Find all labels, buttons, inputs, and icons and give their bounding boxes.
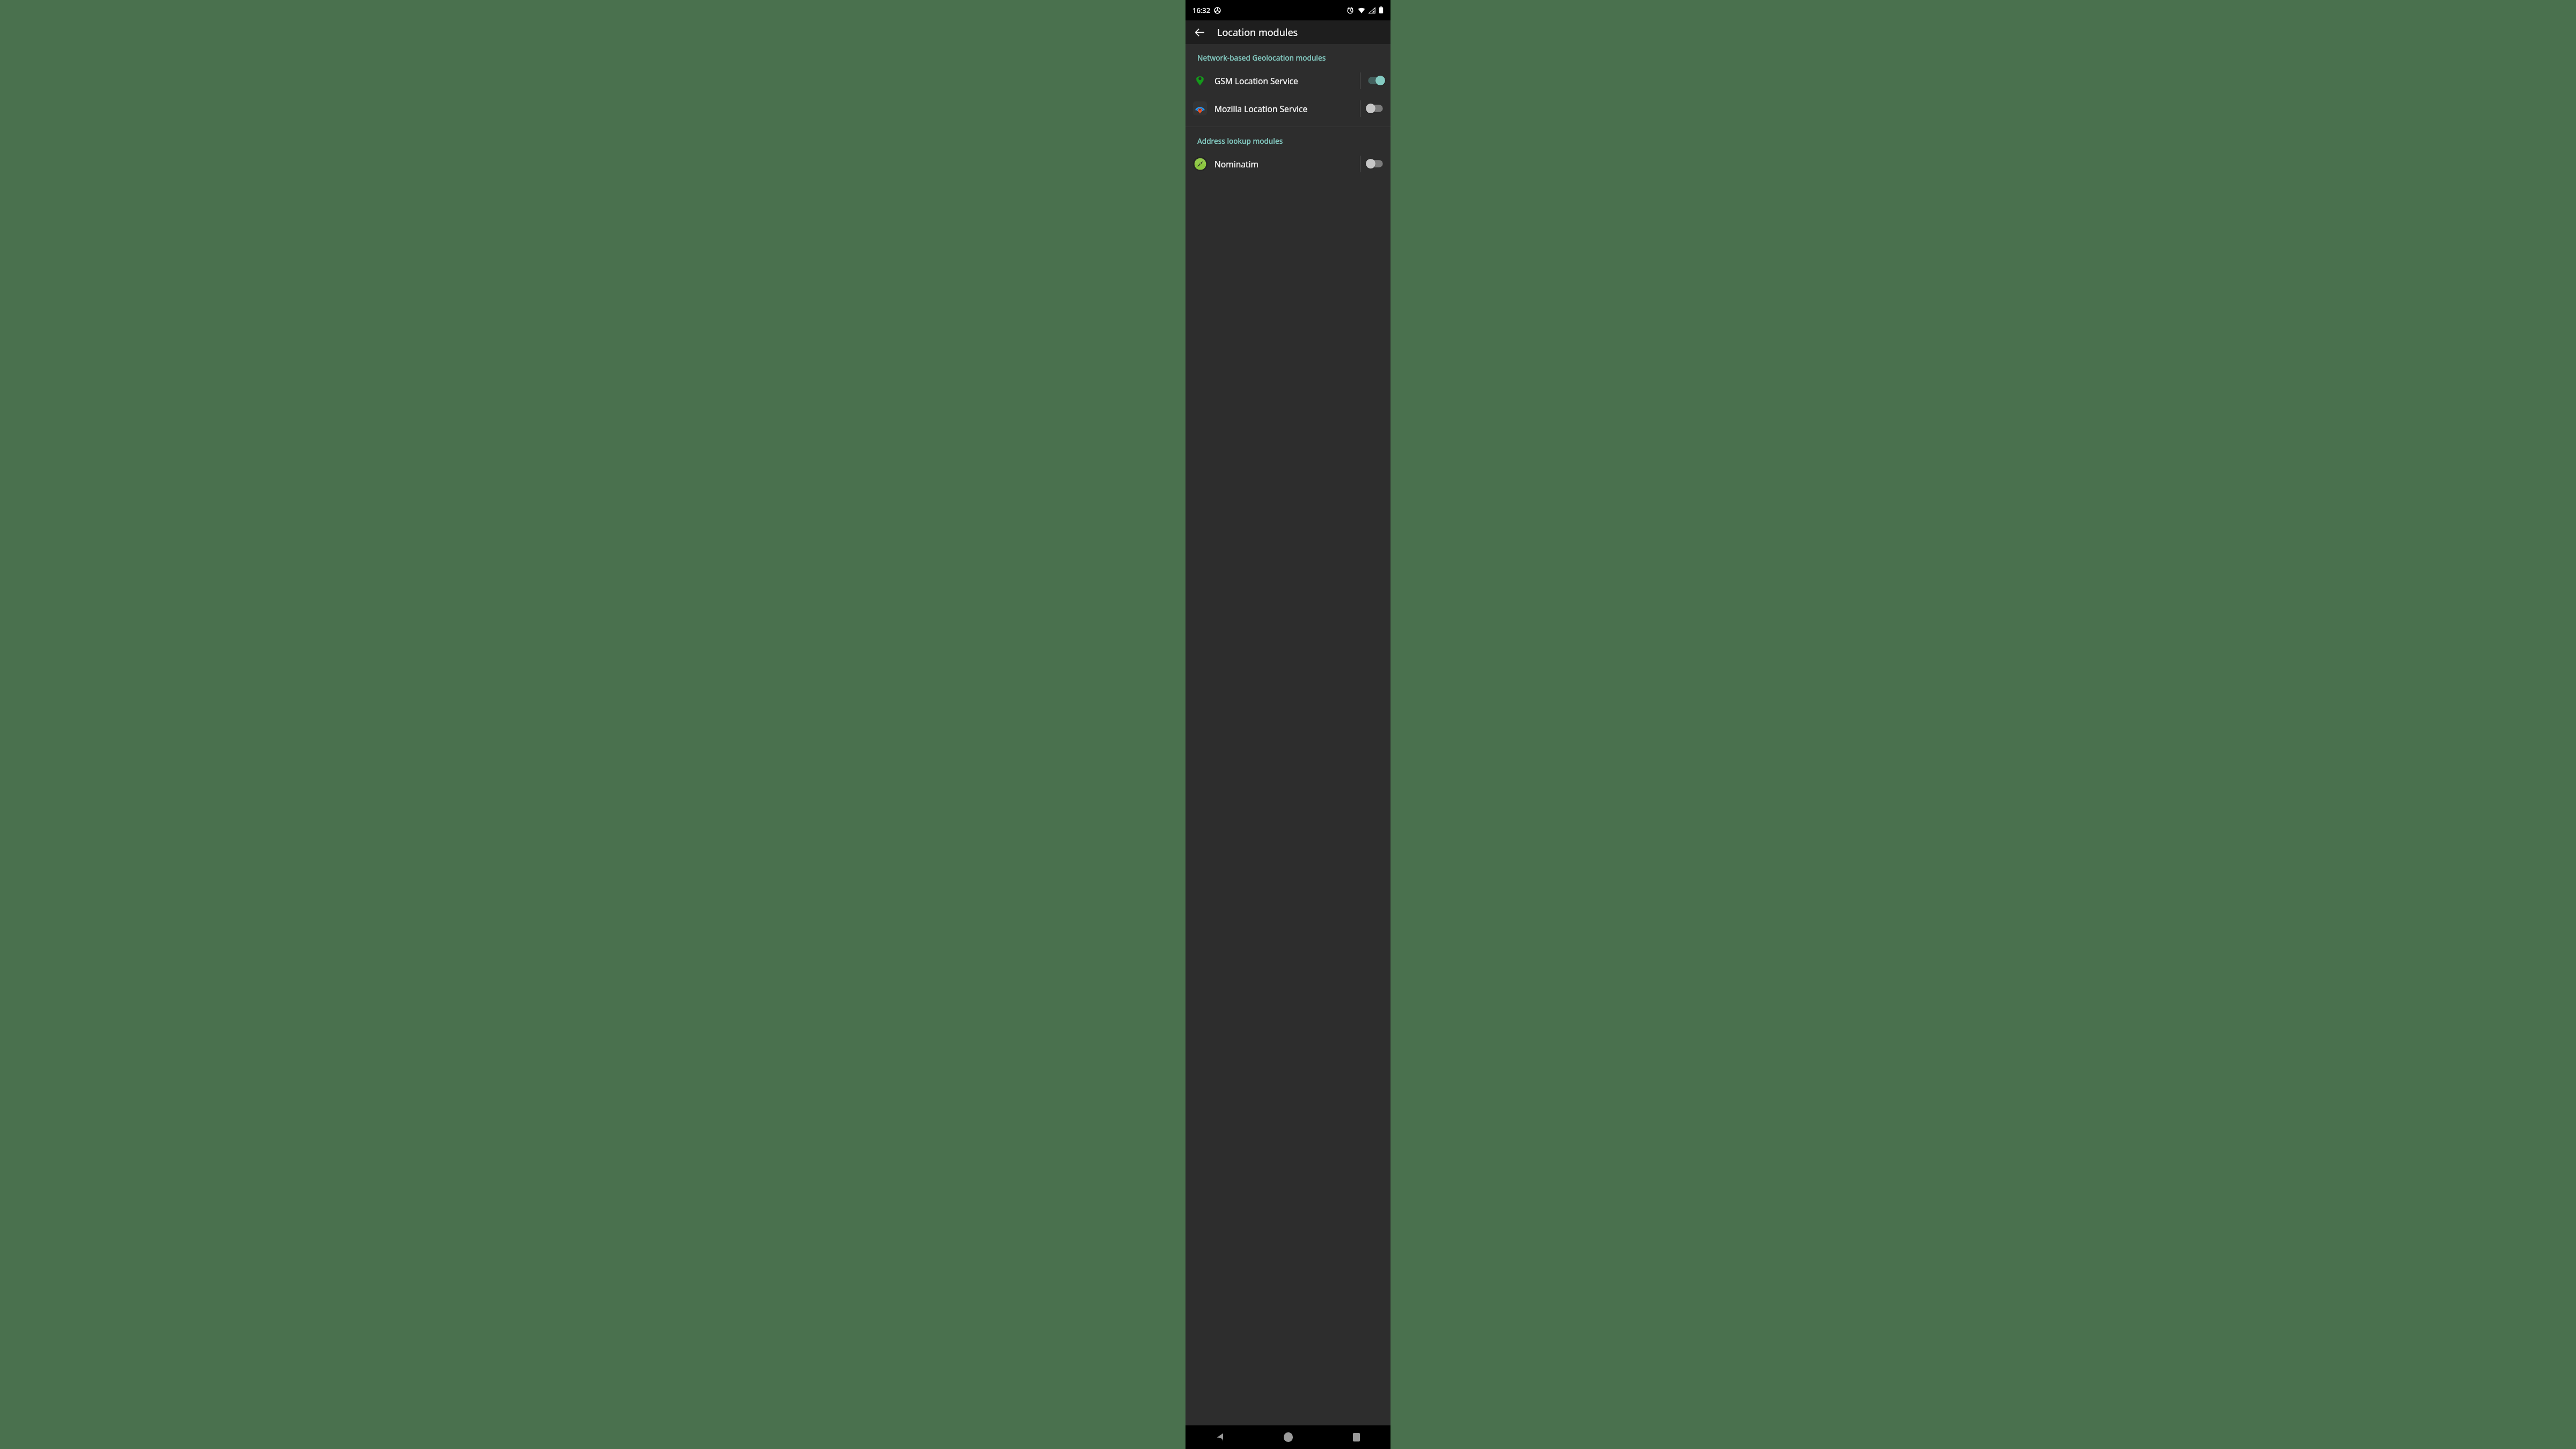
staticText: 16:32 <box>1192 5 1211 15</box>
button[interactable]: Nominatim toggle <box>1360 150 1391 178</box>
staticText: Nominatim <box>1214 158 1360 170</box>
button[interactable]: Back <box>1189 21 1210 43</box>
staticText: GSM Location Service <box>1214 75 1360 86</box>
button[interactable]: Home <box>1254 1425 1322 1449</box>
button[interactable]: Back <box>1185 1425 1254 1449</box>
button[interactable]: Mozilla Location Service <box>1185 94 1391 122</box>
button[interactable]: Recent apps <box>1322 1425 1391 1449</box>
button[interactable]: GSM Location Service toggle <box>1360 67 1391 94</box>
button[interactable]: GSM Location Service <box>1185 67 1391 94</box>
button[interactable]: Nominatim <box>1185 150 1391 178</box>
staticText: Address lookup modules <box>1197 136 1283 146</box>
button[interactable]: Mozilla Location Service toggle <box>1360 94 1391 122</box>
staticText: Location modules <box>1217 26 1298 39</box>
staticText: Network-based Geolocation modules <box>1197 53 1326 63</box>
staticText: Mozilla Location Service <box>1214 103 1360 114</box>
